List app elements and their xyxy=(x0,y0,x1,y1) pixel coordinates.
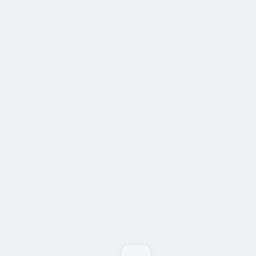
button[interactable]: Card xyxy=(119,244,153,256)
